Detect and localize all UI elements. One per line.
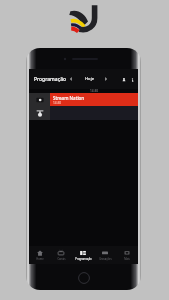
button[interactable]: Channel Stream Nation xyxy=(29,93,50,106)
staticText: Programação xyxy=(34,76,67,83)
button[interactable]: Gravações xyxy=(94,246,116,264)
button[interactable]: Profile xyxy=(119,75,128,84)
staticText: Canais xyxy=(57,257,66,261)
button[interactable]: Search xyxy=(132,75,133,84)
staticText: Programação xyxy=(75,257,92,261)
button[interactable]: Previous day xyxy=(67,75,75,83)
staticText: Gravações xyxy=(99,257,112,261)
staticText: Hoje xyxy=(85,76,95,82)
button[interactable]: Stream Nation xyxy=(50,93,138,106)
button[interactable]: Mais xyxy=(116,246,138,264)
button[interactable]: Next day xyxy=(102,75,110,83)
button[interactable]: Programação xyxy=(72,246,94,264)
staticText: 14:30 xyxy=(53,101,62,105)
staticText: Mais xyxy=(124,257,130,261)
staticText: Home xyxy=(36,257,44,261)
staticText: Stream Nation xyxy=(53,95,85,101)
staticText: 14:30 xyxy=(90,89,99,93)
button[interactable]: Canais xyxy=(50,246,72,264)
button[interactable]: Home xyxy=(29,246,50,264)
button[interactable]: Channel 2 xyxy=(29,106,50,120)
